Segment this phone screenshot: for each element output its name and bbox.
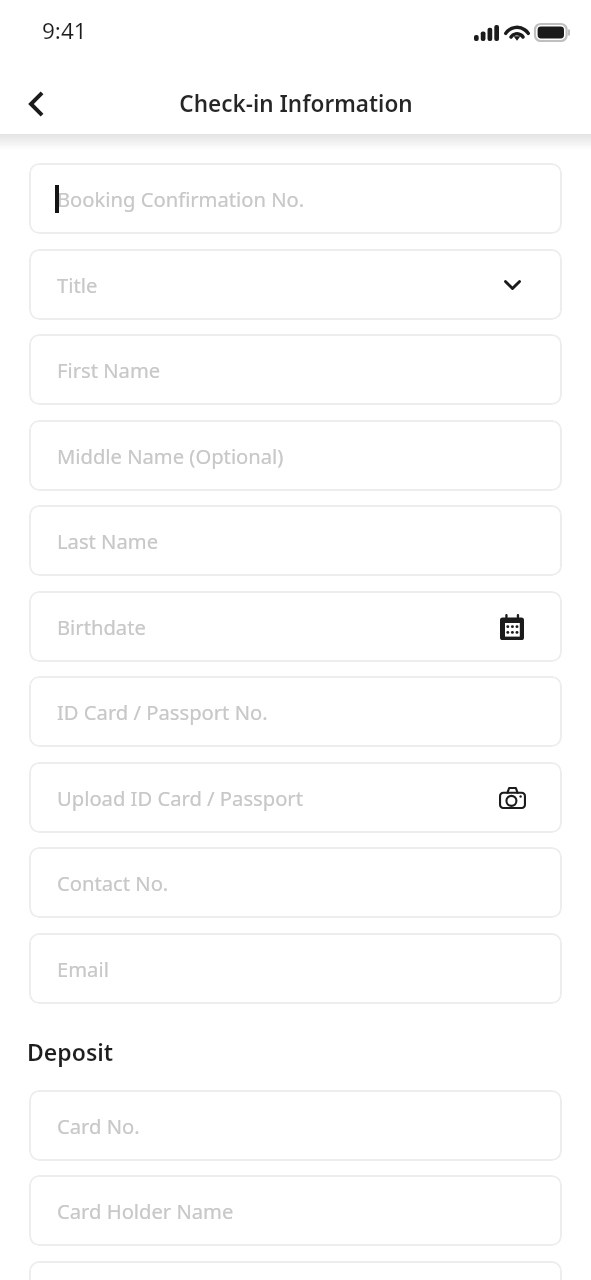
button[interactable]: Middle Name (Optional) <box>29 420 562 491</box>
staticText: Last Name <box>57 527 530 555</box>
staticText: Email <box>57 955 530 983</box>
button[interactable]: Title <box>29 249 562 320</box>
staticText: First Name <box>57 356 530 384</box>
staticText: ID Card / Passport No. <box>57 698 530 726</box>
button[interactable]: ID Card / Passport No. <box>29 676 562 747</box>
button[interactable]: Card Holder Name <box>29 1175 562 1246</box>
button[interactable]: First Name <box>29 334 562 405</box>
button[interactable]: Select title <box>494 267 530 303</box>
button[interactable]: Upload ID Card / Passport <box>29 762 562 833</box>
staticText: Middle Name (Optional) <box>57 442 530 470</box>
button[interactable]: Card No. <box>29 1090 562 1161</box>
button[interactable]: Last Name <box>29 505 562 576</box>
staticText: Deposit <box>27 1036 114 1067</box>
button[interactable]: Pick birthdate <box>494 609 530 645</box>
button[interactable]: Birthdate <box>29 591 562 662</box>
staticText: Card Holder Name <box>57 1197 530 1225</box>
staticText: Contact No. <box>57 869 530 897</box>
staticText: Upload ID Card / Passport <box>57 784 494 812</box>
button[interactable]: Back <box>11 79 61 129</box>
button[interactable]: Expiry Date <box>29 1261 562 1280</box>
button[interactable]: Booking Confirmation No. <box>29 163 562 234</box>
staticText: Birthdate <box>57 613 494 641</box>
staticText: Booking Confirmation No. <box>57 185 530 213</box>
staticText: Card No. <box>57 1112 530 1140</box>
button[interactable]: Contact No. <box>29 847 562 918</box>
staticText: Check-in Information <box>179 88 413 119</box>
button[interactable]: Upload ID card or passport photo <box>494 780 530 816</box>
staticText: Title <box>57 271 494 299</box>
button[interactable]: Email <box>29 933 562 1004</box>
staticText: 9:41 <box>42 15 87 46</box>
